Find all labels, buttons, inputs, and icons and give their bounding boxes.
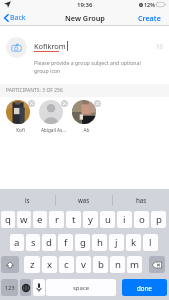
button[interactable]: c (59, 256, 74, 273)
button[interactable]: is (0, 189, 55, 211)
staticText: k (131, 236, 137, 249)
button[interactable]: Remove Kofi (28, 100, 35, 107)
staticText: z (30, 258, 35, 271)
staticText: Please provide a group subject and optio… (34, 59, 141, 74)
staticText: o (139, 213, 145, 226)
button[interactable]: k (126, 234, 141, 251)
staticText: t (72, 213, 76, 226)
staticText: h (97, 236, 103, 249)
staticText: r (55, 213, 59, 226)
staticText: Create (138, 13, 161, 23)
button[interactable]: f (58, 234, 73, 251)
button[interactable]: g (75, 234, 90, 251)
staticText: j (115, 236, 118, 249)
button[interactable]: l (143, 234, 158, 251)
staticText: was (78, 196, 90, 204)
button[interactable]: y (83, 211, 98, 228)
staticText: 19:36 (77, 1, 93, 9)
staticText: e (37, 213, 43, 226)
staticText: d (46, 236, 52, 249)
staticText: Kofi (4, 127, 37, 133)
staticText: x (47, 258, 53, 271)
button[interactable]: n (110, 256, 125, 273)
staticText: g (80, 236, 86, 249)
button[interactable]: s (26, 234, 40, 251)
button[interactable]: Remove Ab (70, 100, 103, 133)
staticText: m (130, 258, 139, 271)
staticText: space (73, 284, 90, 292)
staticText: c (64, 258, 69, 271)
button[interactable]: e (33, 211, 47, 228)
button[interactable]: i (117, 211, 132, 228)
button[interactable]: p (151, 211, 166, 228)
button[interactable]: Dictation (33, 279, 45, 296)
button[interactable]: w (17, 211, 31, 228)
staticText: 12% (144, 1, 155, 8)
staticText: Abigail As... (37, 127, 70, 133)
button[interactable]: x (42, 256, 57, 273)
button[interactable]: Remove Abigail As... (61, 100, 68, 107)
button[interactable]: Switch keyboard (20, 279, 31, 296)
button[interactable]: h (92, 234, 107, 251)
staticText: n (115, 258, 121, 271)
staticText: has (136, 196, 147, 204)
button[interactable]: j (109, 234, 124, 251)
staticText: a (14, 236, 20, 249)
button[interactable]: Backspace (149, 256, 165, 273)
staticText: q (5, 213, 11, 226)
staticText: i (123, 213, 126, 226)
staticText: v (81, 258, 86, 271)
button[interactable]: 123 (1, 279, 18, 296)
staticText: p (156, 213, 162, 226)
button[interactable]: m (127, 256, 142, 273)
button[interactable]: has (113, 189, 169, 211)
button[interactable]: b (93, 256, 108, 273)
staticText: u (105, 213, 111, 226)
staticText: 16 (156, 42, 164, 50)
button[interactable]: d (42, 234, 56, 251)
button[interactable]: Create (134, 11, 169, 25)
staticText: New Group (65, 13, 105, 23)
staticText: is (25, 196, 30, 204)
staticText: Back (10, 13, 26, 23)
button[interactable]: t (66, 211, 81, 228)
staticText: Kofikrom (34, 41, 66, 51)
staticText: f (64, 236, 68, 249)
button[interactable]: r (49, 211, 64, 228)
staticText: 123 (5, 284, 15, 292)
staticText: b (98, 258, 104, 271)
button[interactable]: space (46, 279, 116, 296)
staticText: done (137, 284, 152, 292)
button[interactable]: q (1, 211, 15, 228)
button[interactable]: u (100, 211, 115, 228)
button[interactable]: Remove Abigail As... (37, 100, 70, 133)
button[interactable]: Remove Ab (94, 100, 101, 107)
button[interactable]: Back (0, 11, 31, 25)
staticText: w (20, 213, 28, 226)
staticText: s (31, 236, 36, 249)
staticText: Ab (70, 127, 103, 133)
button[interactable]: done (122, 279, 167, 296)
button[interactable]: o (134, 211, 149, 228)
staticText: PARTICIPANTS: 3 OF 256 (6, 87, 63, 94)
staticText: l (149, 236, 152, 249)
button[interactable]: Add group icon (6, 37, 27, 58)
button[interactable]: was (56, 189, 112, 211)
button[interactable]: Remove Kofi (4, 100, 37, 133)
button[interactable]: Shift (1, 256, 19, 273)
button[interactable]: a (10, 234, 24, 251)
button[interactable]: z (24, 256, 40, 273)
button[interactable]: v (76, 256, 91, 273)
staticText: y (88, 213, 93, 226)
